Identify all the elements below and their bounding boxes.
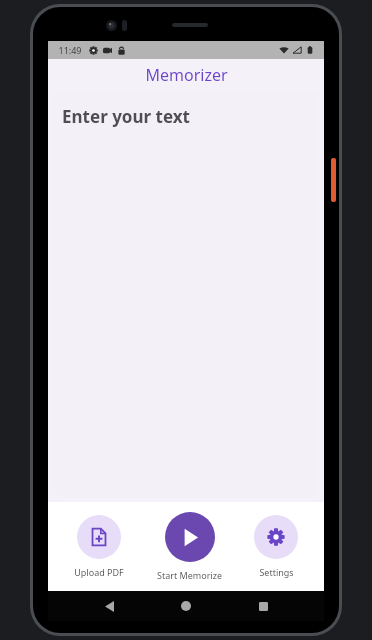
button[interactable]: Upload PDF: [68, 513, 130, 580]
button[interactable]: Home: [171, 591, 201, 621]
button[interactable]: Recents: [248, 591, 278, 621]
staticText: Settings: [259, 566, 294, 578]
staticText: Enter your text: [62, 105, 190, 128]
button[interactable]: Back: [95, 591, 125, 621]
button[interactable]: Settings: [248, 513, 304, 580]
staticText: Upload PDF: [74, 566, 124, 578]
staticText: Start Memorize: [157, 569, 222, 581]
button[interactable]: Enter your text: [54, 91, 318, 498]
staticText: Memorizer: [145, 64, 228, 86]
staticText: 11:49: [58, 44, 82, 56]
button[interactable]: Start Memorize: [151, 510, 228, 583]
